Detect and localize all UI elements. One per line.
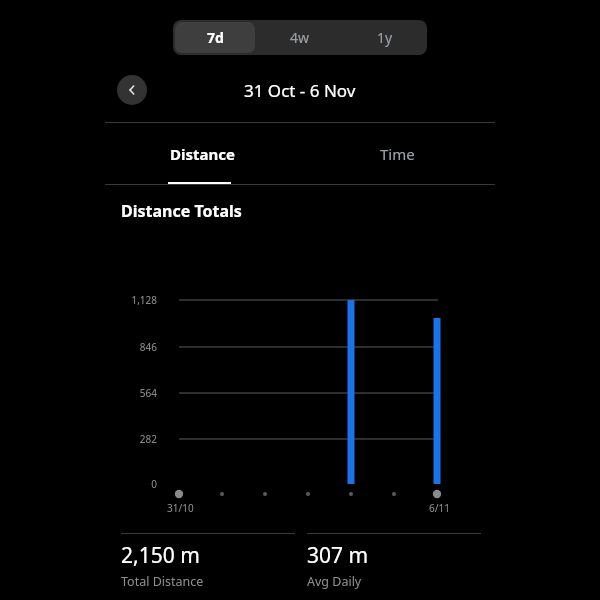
staticText: 846 (139, 340, 157, 354)
staticText: 7d (207, 28, 224, 47)
staticText: 1y (377, 28, 393, 47)
staticText: 6/11 (429, 501, 450, 515)
staticText: 2,150 m (121, 541, 200, 570)
staticText: Avg Daily (307, 573, 362, 590)
staticText: 282 (139, 432, 157, 446)
button[interactable]: Back (117, 75, 147, 105)
button[interactable]: 7d (175, 22, 255, 53)
staticText: Time (380, 144, 415, 164)
staticText: 307 m (307, 541, 369, 570)
button[interactable]: Time (300, 123, 495, 185)
staticText: 4w (290, 28, 310, 47)
staticText: 31/10 (167, 501, 194, 515)
staticText: Distance Totals (121, 200, 242, 222)
button[interactable]: Distance (105, 123, 300, 185)
staticText: 0 (151, 477, 157, 491)
staticText: Distance (170, 144, 235, 164)
staticText: 564 (139, 386, 157, 400)
staticText: Total Distance (121, 573, 204, 590)
staticText: 31 Oct - 6 Nov (244, 79, 356, 102)
button[interactable]: 4w (259, 22, 340, 53)
staticText: 1,128 (131, 293, 157, 307)
button[interactable]: 1y (344, 22, 425, 53)
